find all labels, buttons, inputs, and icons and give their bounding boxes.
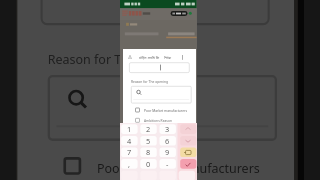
button[interactable]: 3 (159, 124, 175, 134)
staticText: निवेश (164, 55, 171, 60)
staticText: Reason for The opening (131, 79, 168, 83)
button[interactable]: 0 (140, 159, 156, 169)
staticText: 5 (146, 136, 151, 146)
staticText: 4 (127, 136, 132, 146)
staticText: Poor Market manufacturers (97, 158, 260, 173)
button[interactable]: Backspace (180, 147, 196, 157)
button[interactable]: 6 (159, 136, 175, 146)
button[interactable]: 1 (121, 124, 137, 134)
staticText: , (128, 159, 130, 169)
staticText: 2 (146, 124, 151, 134)
button[interactable]: 8 (140, 147, 156, 157)
button[interactable]: 2 (140, 124, 156, 134)
button[interactable]: 7 (121, 147, 137, 157)
button[interactable]: Done (180, 159, 196, 169)
button[interactable]: 5 (140, 136, 156, 146)
staticText: 0 (146, 159, 151, 169)
staticText: 8 (146, 147, 151, 157)
staticText: 1 (127, 124, 132, 134)
staticText: Ambitions Reason (144, 118, 172, 122)
button[interactable]: 4 (121, 136, 137, 146)
staticText: 9 (165, 147, 170, 157)
staticText: - (166, 159, 169, 169)
button[interactable]: Next field (180, 136, 196, 146)
staticText: 7 (127, 147, 132, 157)
button[interactable]: - (159, 159, 175, 169)
staticText: 3 (165, 124, 170, 134)
button[interactable]: , (121, 159, 137, 169)
button[interactable]: 9 (159, 147, 175, 157)
staticText: Reason for The opening (48, 48, 188, 64)
staticText: 6 (165, 136, 170, 146)
staticText: मोहित अवधि कि (139, 55, 160, 60)
button[interactable]: Previous field (180, 124, 196, 134)
staticText: Poor Market manufacturers (144, 108, 187, 112)
